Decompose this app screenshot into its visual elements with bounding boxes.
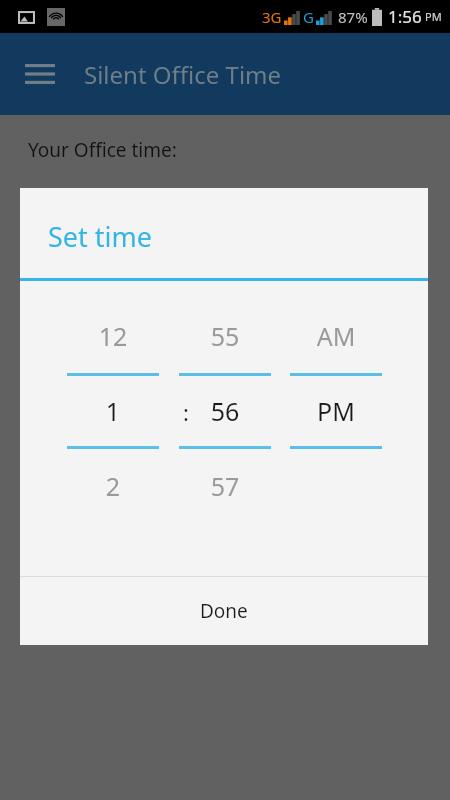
staticText: G xyxy=(303,7,314,27)
staticText: : xyxy=(180,397,192,427)
staticText: 87% xyxy=(338,7,368,27)
staticText: 1:56 xyxy=(388,5,422,28)
staticText: 3G xyxy=(262,7,282,27)
staticText: 1 xyxy=(67,394,159,428)
button[interactable]: 55 xyxy=(179,281,271,503)
staticText: 57 xyxy=(179,469,271,503)
staticText: Your Office time: xyxy=(28,137,177,163)
staticText: Done xyxy=(200,598,248,624)
button[interactable]: Open navigation menu xyxy=(18,52,62,96)
staticText: Set time xyxy=(48,218,153,255)
button[interactable]: Done xyxy=(20,577,428,645)
button[interactable]: AM xyxy=(290,281,382,449)
staticText: Silent Office Time xyxy=(84,58,282,91)
staticText: 55 xyxy=(179,319,271,353)
staticText: 2 xyxy=(67,469,159,503)
staticText: 12 xyxy=(67,319,159,353)
button[interactable]: 12 xyxy=(67,281,159,503)
staticText: AM xyxy=(290,319,382,353)
staticText: PM xyxy=(425,9,442,24)
staticText: 56 xyxy=(179,394,271,428)
staticText: PM xyxy=(290,394,382,428)
